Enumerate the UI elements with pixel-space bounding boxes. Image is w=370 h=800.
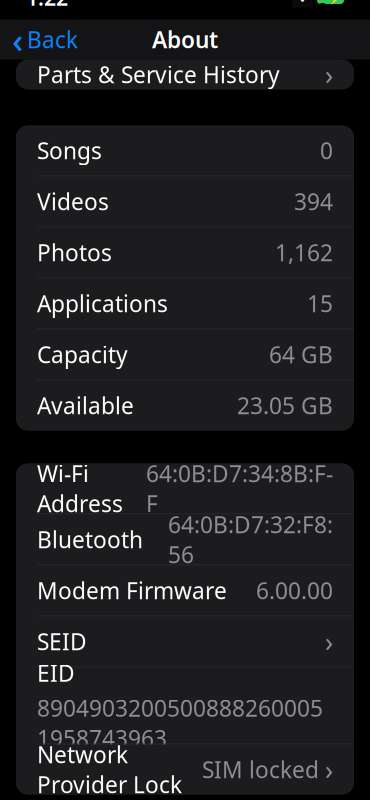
button[interactable]: ‹ (0, 19, 90, 59)
button[interactable]: Parts & Service History (16, 59, 354, 89)
staticText: Videos (37, 186, 109, 216)
button[interactable]: Photos (16, 227, 354, 277)
staticText: ‹ (12, 16, 23, 62)
staticText: 0 (320, 135, 333, 165)
button[interactable]: Modem Firmware (16, 565, 354, 615)
staticText: Capacity (37, 339, 128, 369)
staticText: Back (27, 24, 78, 54)
staticText: SIM locked (202, 754, 319, 784)
staticText: 89049032005008882600051958743963 (37, 693, 323, 753)
staticText: SEID (37, 626, 87, 656)
staticText: › (325, 752, 333, 787)
staticText: 64:0B:D7:32:F8:56 (168, 509, 333, 570)
staticText: Bluetooth (37, 524, 143, 554)
button[interactable]: Videos (16, 176, 354, 226)
staticText: Songs (37, 135, 102, 165)
staticText: › (325, 624, 333, 659)
staticText: 15 (307, 288, 333, 318)
staticText: Parts & Service History (37, 59, 280, 89)
staticText: Applications (37, 288, 168, 318)
staticText: EID (37, 658, 75, 688)
button[interactable]: Applications (16, 278, 354, 328)
staticText: 1,162 (275, 237, 333, 267)
staticText: 1:22 (26, 0, 68, 12)
staticText: Wi-Fi Address (37, 458, 123, 519)
staticText: 6.00.00 (256, 575, 333, 605)
staticText: 42 (318, 0, 326, 17)
button[interactable]: Available (16, 380, 354, 430)
staticText: 64:0B:D7:34:8B:FF (146, 458, 333, 519)
staticText: ⚡ (327, 0, 342, 4)
button[interactable]: Bluetooth (16, 514, 354, 564)
staticText: Photos (37, 237, 112, 267)
staticText: 23.05 GB (237, 390, 333, 420)
staticText: About (152, 24, 218, 54)
button[interactable]: Songs (16, 125, 354, 175)
button[interactable]: EID (16, 667, 354, 743)
button[interactable]: Capacity (16, 329, 354, 379)
staticText: Network Provider Lock (37, 739, 182, 800)
button[interactable]: Network Provider Lock (16, 744, 354, 794)
staticText: 64 GB (269, 339, 333, 369)
staticText: Available (37, 390, 134, 420)
staticText: 394 (294, 186, 333, 216)
staticText: › (325, 57, 333, 92)
button[interactable]: SEID (16, 616, 354, 666)
button[interactable]: Wi-Fi Address (16, 463, 354, 513)
staticText: Modem Firmware (37, 575, 227, 605)
